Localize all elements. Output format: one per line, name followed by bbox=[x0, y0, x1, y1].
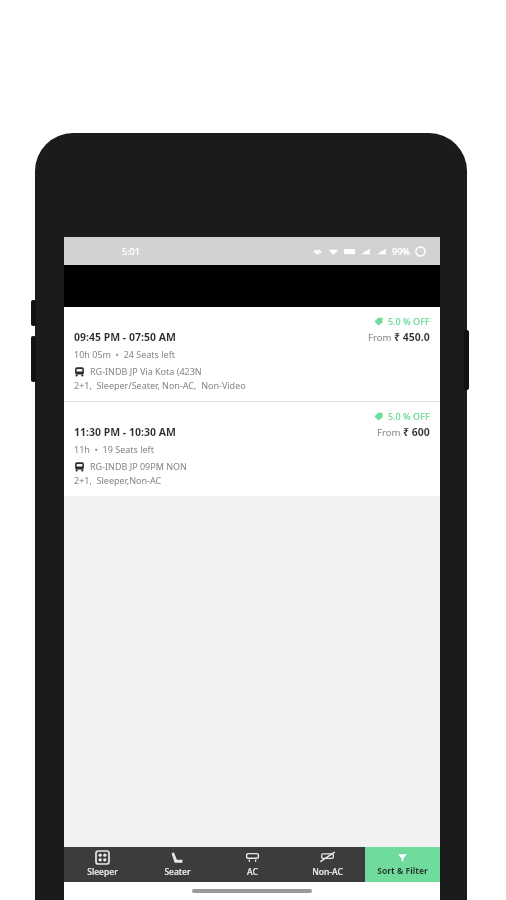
staticText: 11:30 PM - 10:30 AM bbox=[74, 425, 176, 439]
staticText: 2+1, Sleeper,Non-AC bbox=[74, 474, 162, 486]
button[interactable]: Sleeper bbox=[64, 847, 140, 882]
staticText: RG-INDB JP Via Kota (423N bbox=[90, 365, 202, 377]
button[interactable]: AC bbox=[215, 847, 290, 882]
staticText: 11h • 19 Seats left bbox=[74, 443, 154, 455]
button[interactable]: Non-AC bbox=[290, 847, 365, 882]
staticText: Sleeper bbox=[87, 866, 118, 878]
staticText: From bbox=[368, 331, 394, 344]
staticText: AC bbox=[247, 866, 258, 878]
staticText: ₹ 450.0 bbox=[394, 330, 430, 344]
staticText: 09:45 PM - 07:50 AM bbox=[74, 330, 176, 344]
staticText: 99% bbox=[392, 245, 410, 257]
button[interactable]: Seater bbox=[140, 847, 215, 882]
button[interactable]: 5.0 % OFF bbox=[64, 402, 440, 496]
staticText: Seater bbox=[164, 866, 191, 878]
button[interactable]: Sort & Filter bbox=[365, 847, 440, 882]
staticText: 2+1, Sleeper/Seater, Non-AC, Non-Video bbox=[74, 379, 246, 391]
button[interactable]: 5.0 % OFF bbox=[64, 307, 440, 401]
staticText: Non-AC bbox=[312, 866, 343, 878]
staticText: ₹ 600 bbox=[403, 425, 430, 439]
staticText: RG-INDB JP 09PM NON bbox=[90, 460, 187, 472]
staticText: From bbox=[377, 426, 403, 439]
staticText: 5.0 % OFF bbox=[388, 315, 430, 327]
staticText: 5.0 % OFF bbox=[388, 410, 430, 422]
staticText: Sort & Filter bbox=[377, 865, 428, 877]
staticText: 10h 05m • 24 Seats left bbox=[74, 348, 175, 360]
staticText: 5:01 bbox=[122, 245, 140, 257]
